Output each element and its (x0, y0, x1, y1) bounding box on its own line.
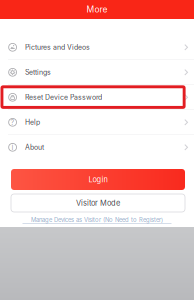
button[interactable]: ? (0, 110, 194, 135)
staticText: Visitor Mode (76, 198, 120, 207)
staticText: Settings (25, 68, 51, 76)
staticText: More (86, 4, 107, 15)
staticText: About (25, 143, 44, 151)
staticText: Help (25, 118, 40, 126)
staticText: Pictures and Videos (25, 43, 90, 51)
staticText: Reset Device Password (25, 93, 102, 101)
staticText: Login (88, 175, 107, 184)
button[interactable]: Manage Devices as Visitor (No Need to Re… (0, 216, 194, 224)
button[interactable]: Pictures and Videos (0, 35, 194, 60)
button[interactable]: i (0, 135, 194, 160)
staticText: ? (11, 118, 15, 127)
button[interactable]: Visitor Mode (11, 194, 185, 212)
button[interactable]: Reset Device Password (0, 85, 194, 110)
button[interactable]: Login (11, 169, 185, 190)
button[interactable]: Settings (0, 60, 194, 85)
staticText: i (12, 143, 14, 152)
staticText: Manage Devices as Visitor (No Need to Re… (31, 216, 163, 223)
